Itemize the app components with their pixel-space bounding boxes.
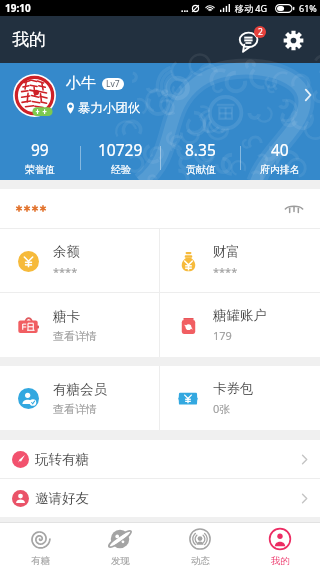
staticText: 10729 bbox=[98, 139, 143, 160]
staticText: 有糖会员 bbox=[53, 381, 107, 398]
staticText: 19:10 bbox=[5, 1, 31, 15]
staticText: 府内排名 bbox=[260, 163, 300, 176]
staticText: 余额 bbox=[53, 243, 80, 260]
staticText: 查看详情 bbox=[53, 329, 97, 343]
staticText: 暴力小团伙 bbox=[78, 100, 141, 116]
staticText: 经验 bbox=[111, 163, 131, 176]
button[interactable]: 8.35 bbox=[160, 127, 240, 180]
staticText: 99 bbox=[31, 139, 49, 160]
button[interactable]: Settings bbox=[272, 19, 314, 61]
button[interactable]: Messages bbox=[230, 19, 272, 61]
staticText: 40 bbox=[271, 139, 289, 160]
staticText: **** bbox=[213, 264, 238, 279]
staticText: 动态 bbox=[191, 555, 210, 567]
button[interactable]: 我的 bbox=[240, 523, 320, 569]
staticText: 我的 bbox=[271, 555, 290, 567]
button[interactable]: 40 bbox=[240, 127, 320, 180]
staticText: 移动 4G bbox=[235, 2, 268, 14]
staticText: 玩转有糖 bbox=[35, 451, 89, 468]
staticText: 查看详情 bbox=[53, 402, 97, 416]
button[interactable]: 玩转有糖 bbox=[0, 440, 320, 478]
staticText: 小牛 bbox=[66, 74, 96, 93]
staticText: 61% bbox=[299, 2, 317, 14]
staticText: 我的 bbox=[12, 29, 46, 50]
staticText: 糖卡 bbox=[53, 308, 80, 325]
staticText: 发现 bbox=[111, 555, 130, 567]
button[interactable]: 糖卡 bbox=[0, 293, 159, 357]
staticText: Lv7 bbox=[106, 78, 120, 90]
button[interactable]: 卡券包 bbox=[160, 366, 320, 430]
staticText: ... bbox=[181, 2, 189, 14]
button[interactable]: 财富 bbox=[160, 229, 320, 292]
button[interactable]: 糖罐账户 bbox=[160, 293, 320, 357]
staticText: 0张 bbox=[213, 401, 231, 416]
button[interactable]: 99 bbox=[0, 127, 80, 180]
staticText: 邀请好友 bbox=[35, 490, 89, 507]
button[interactable]: 发现 bbox=[80, 523, 160, 569]
staticText: 财富 bbox=[213, 243, 240, 260]
button[interactable]: 有糖 bbox=[0, 523, 80, 569]
button[interactable]: 邀请好友 bbox=[0, 479, 320, 517]
button[interactable]: 有糖会员 bbox=[0, 366, 159, 430]
button[interactable]: 动态 bbox=[160, 523, 240, 569]
staticText: 贡献值 bbox=[186, 163, 216, 176]
staticText: 有糖 bbox=[31, 555, 50, 567]
staticText: 糖罐账户 bbox=[213, 307, 267, 324]
button[interactable]: Hide amounts bbox=[279, 193, 309, 223]
staticText: **** bbox=[53, 264, 78, 279]
button[interactable]: 小牛 bbox=[0, 63, 320, 127]
staticText: 卡券包 bbox=[213, 380, 254, 397]
staticText: 荣誉值 bbox=[25, 163, 55, 176]
staticText: 2 bbox=[258, 26, 263, 38]
staticText: 8.35 bbox=[185, 139, 216, 160]
button[interactable]: 余额 bbox=[0, 229, 159, 292]
button[interactable]: 10729 bbox=[80, 127, 160, 180]
staticText: 179 bbox=[213, 328, 232, 343]
